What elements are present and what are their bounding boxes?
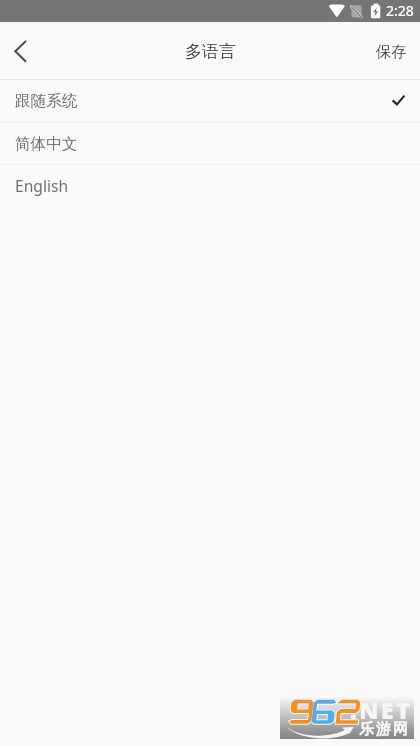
staticText: .NET (350, 694, 413, 725)
button[interactable]: 简体中文 (0, 123, 420, 164)
staticText: English (15, 175, 69, 196)
staticText: 2:28 (386, 1, 414, 20)
staticText: 简体中文 (15, 134, 78, 154)
button[interactable]: English (0, 165, 420, 205)
staticText: 跟随系统 (15, 91, 78, 111)
staticText: 多语言 (185, 41, 236, 62)
button[interactable]: 跟随系统 (0, 80, 420, 122)
button[interactable]: Back (0, 22, 52, 79)
staticText: 保存 (376, 42, 407, 61)
staticText: 乐游网 (358, 720, 409, 739)
button[interactable]: 保存 (359, 27, 420, 74)
